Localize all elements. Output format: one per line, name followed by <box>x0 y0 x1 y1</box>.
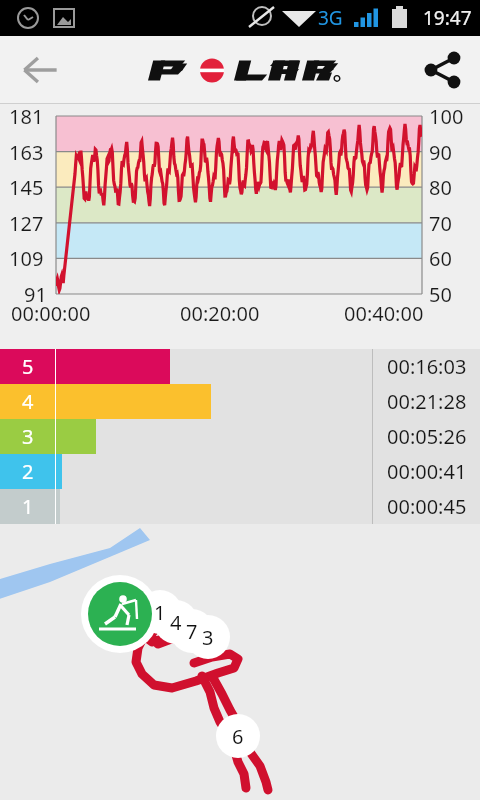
staticText: 3 <box>22 423 34 450</box>
staticText: 1 <box>22 493 34 520</box>
staticText: 19:47 <box>423 5 472 31</box>
staticText: 1 <box>154 599 166 626</box>
staticText: 90 <box>429 139 452 166</box>
staticText: 6 <box>232 723 244 750</box>
staticText: 00:20:00 <box>180 300 260 327</box>
staticText: 4 <box>170 609 182 636</box>
button[interactable]: 4 <box>0 384 480 419</box>
button[interactable]: Back <box>14 44 66 96</box>
staticText: 00:16:03 <box>387 353 467 380</box>
staticText: 00:00:45 <box>387 493 467 520</box>
staticText: 80 <box>429 174 452 201</box>
button[interactable]: Route map <box>0 524 480 800</box>
staticText: 3 <box>202 624 214 651</box>
staticText: 163 <box>9 139 44 166</box>
staticText: 00:21:28 <box>387 388 467 415</box>
staticText: 4 <box>22 388 34 415</box>
button[interactable]: 2 <box>0 454 480 489</box>
staticText: 3G <box>318 5 343 31</box>
staticText: 145 <box>9 174 44 201</box>
staticText: 00:00:00 <box>11 300 91 327</box>
staticText: 5 <box>22 353 34 380</box>
staticText: 181 <box>9 103 44 130</box>
staticText: 127 <box>9 210 44 237</box>
staticText: 50 <box>429 281 452 308</box>
staticText: 91 <box>24 281 47 308</box>
button[interactable]: 5 <box>0 349 480 384</box>
staticText: 70 <box>429 210 452 237</box>
button[interactable]: Share <box>418 46 466 94</box>
staticText: 00:00:41 <box>387 458 467 485</box>
staticText: 7 <box>186 618 198 645</box>
staticText: 100 <box>429 103 464 130</box>
staticText: 00:05:26 <box>387 423 467 450</box>
staticText: 2 <box>22 458 34 485</box>
button[interactable]: 3 <box>0 419 480 454</box>
staticText: 109 <box>9 245 44 272</box>
staticText: 60 <box>429 245 452 272</box>
staticText: 00:40:00 <box>344 300 424 327</box>
button[interactable]: 1 <box>0 489 480 524</box>
